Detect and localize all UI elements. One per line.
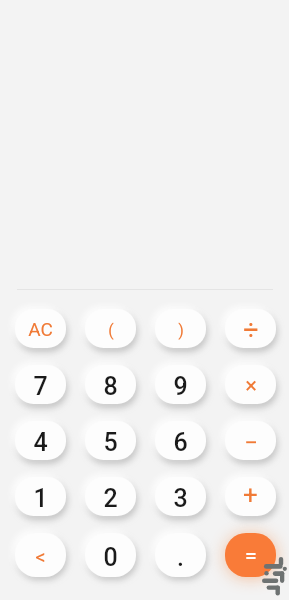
staticText: 7 [33, 372, 48, 401]
staticText: − [244, 429, 258, 457]
button[interactable]: − [225, 421, 276, 460]
button[interactable]: 0 [85, 533, 136, 577]
button[interactable]: AC [15, 309, 66, 348]
button[interactable]: = [225, 533, 276, 577]
staticText: 6 [173, 428, 188, 457]
button[interactable]: 2 [85, 477, 136, 516]
staticText: < [35, 545, 46, 568]
staticText: ( [108, 321, 114, 340]
staticText: AC [28, 318, 53, 340]
button[interactable]: < [15, 533, 66, 577]
staticText: 5 [103, 428, 118, 457]
button[interactable]: 8 [85, 365, 136, 404]
staticText: 8 [103, 372, 118, 401]
staticText: . [177, 543, 184, 572]
staticText: + [243, 480, 258, 510]
staticText: 2 [103, 484, 118, 513]
button[interactable]: 9 [155, 365, 206, 404]
staticText: 0 [103, 543, 118, 572]
button[interactable]: 6 [155, 421, 206, 460]
button[interactable]: 1 [15, 477, 66, 516]
button[interactable]: ) [155, 309, 206, 348]
staticText: 3 [173, 484, 188, 513]
button[interactable]: 5 [85, 421, 136, 460]
staticText: ÷ [243, 314, 259, 346]
button[interactable]: 4 [15, 421, 66, 460]
staticText: = [245, 544, 257, 569]
staticText: 4 [33, 428, 48, 457]
button[interactable]: ( [85, 309, 136, 348]
button[interactable]: × [225, 365, 276, 404]
staticText: 9 [173, 372, 188, 401]
button[interactable]: + [225, 477, 276, 516]
staticText: ) [178, 321, 184, 340]
staticText: 1 [33, 484, 48, 513]
button[interactable]: 7 [15, 365, 66, 404]
button[interactable]: . [155, 533, 206, 577]
button[interactable]: ÷ [225, 309, 276, 348]
staticText: × [245, 373, 257, 399]
button[interactable]: 3 [155, 477, 206, 516]
